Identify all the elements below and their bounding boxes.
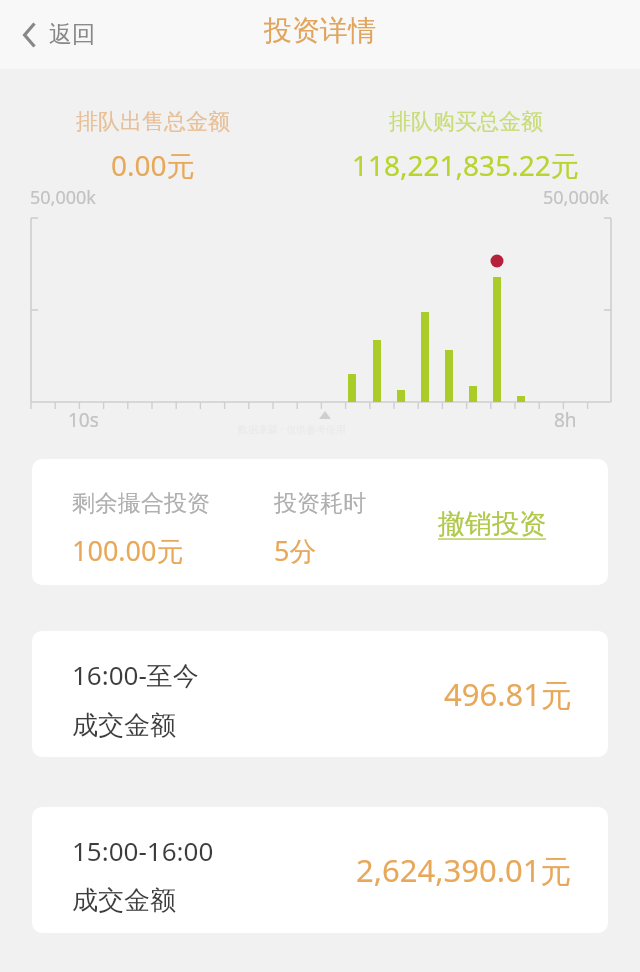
staticText: 成交金额: [72, 884, 176, 917]
staticText: 0.00元: [111, 146, 195, 184]
staticText: 撤销投资: [438, 507, 546, 541]
staticText: 5分: [274, 532, 317, 569]
staticText: 2,624,390.01元: [356, 849, 572, 891]
staticText: 剩余撮合投资: [72, 489, 210, 518]
staticText: 16:00-至今: [72, 657, 199, 693]
staticText: 排队购买总金额: [389, 108, 543, 136]
staticText: 投资耗时: [274, 489, 366, 518]
staticText: 50,000k: [30, 185, 96, 210]
staticText: 8h: [554, 407, 577, 433]
staticText: 排队出售总金额: [76, 108, 230, 136]
staticText: 50,000k: [543, 185, 609, 210]
button[interactable]: 撤销投资: [432, 501, 552, 547]
staticText: 100.00元: [72, 532, 184, 569]
staticText: 投资详情: [264, 13, 376, 48]
button[interactable]: 16:00-至今: [32, 631, 608, 757]
staticText: 496.81元: [444, 673, 572, 715]
staticText: 返回: [49, 20, 95, 49]
button[interactable]: 返回: [14, 14, 103, 55]
staticText: 10s: [68, 407, 99, 433]
staticText: 118,221,835.22元: [352, 146, 579, 184]
button[interactable]: 15:00-16:00: [32, 807, 608, 933]
staticText: 成交金额: [72, 709, 176, 742]
staticText: 15:00-16:00: [72, 833, 214, 868]
